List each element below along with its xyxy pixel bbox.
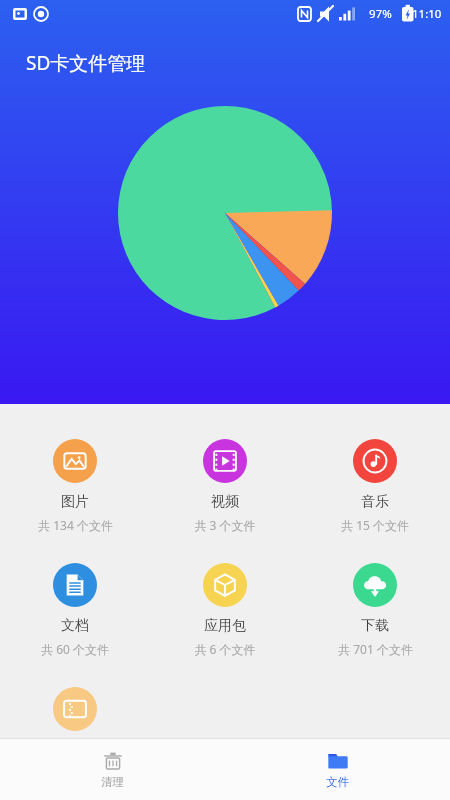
other: Archives [53,687,97,731]
button[interactable]: Images [0,435,150,537]
button[interactable]: 文件 [225,739,450,800]
staticText: 共 134 个文件 [38,517,113,533]
staticText: 音乐 [361,493,389,511]
other: Videos [203,439,247,483]
staticText: 视频 [211,493,239,511]
button[interactable]: Documents [0,559,150,661]
staticText: 应用包 [204,617,246,635]
other: Music [353,439,397,483]
staticText: 清理 [101,775,124,789]
staticText: 共 60 个文件 [41,641,109,657]
staticText: SD卡文件管理 [26,50,146,76]
staticText: 文档 [61,617,89,635]
staticText: 共 3 个文件 [194,517,256,533]
staticText: 共 6 个文件 [194,641,256,657]
other: Images [53,439,97,483]
button[interactable]: Apps [150,559,300,661]
button[interactable]: Videos [150,435,300,537]
button[interactable]: Archives [0,683,150,738]
staticText: 共 15 个文件 [341,517,409,533]
other: Apps [203,563,247,607]
button[interactable]: Music [300,435,450,537]
staticText: 下载 [361,617,389,635]
staticText: 11:10 [412,6,442,22]
staticText: 共 701 个文件 [338,641,413,657]
other: Documents [53,563,97,607]
staticText: 图片 [61,493,89,511]
staticText: 97% [369,6,392,22]
other: Downloads [353,563,397,607]
staticText: 文件 [326,775,349,789]
button[interactable]: 清理 [0,739,225,800]
button[interactable]: Downloads [300,559,450,661]
